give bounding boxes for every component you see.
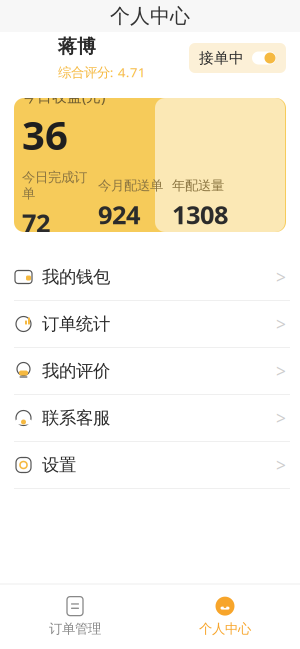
- staticText: 4.71: [118, 63, 146, 81]
- button[interactable]: 我的评价: [0, 348, 300, 395]
- staticText: 1308: [172, 198, 228, 231]
- staticText: 我的评价: [42, 360, 110, 382]
- staticText: 个人中心: [199, 621, 251, 637]
- staticText: 我的钱包: [42, 266, 110, 288]
- button[interactable]: 个人中心: [150, 590, 300, 643]
- staticText: >: [276, 359, 286, 382]
- staticText: >: [276, 453, 286, 476]
- staticText: 今月配送单: [98, 177, 163, 194]
- staticText: 72: [22, 206, 50, 239]
- staticText: 订单统计: [42, 313, 110, 335]
- button[interactable]: 接单中: [189, 43, 286, 73]
- staticText: 924: [98, 198, 140, 231]
- staticText: 年配送量: [172, 177, 224, 194]
- button[interactable]: 订单统计: [0, 301, 300, 348]
- staticText: >: [276, 406, 286, 429]
- button[interactable]: 设置: [0, 442, 300, 489]
- staticText: 接单中: [199, 49, 244, 67]
- staticText: 个人中心: [110, 4, 190, 28]
- button[interactable]: 订单管理: [0, 590, 150, 643]
- staticText: 订单管理: [49, 621, 101, 637]
- staticText: >: [276, 265, 286, 288]
- staticText: 设置: [42, 454, 76, 476]
- staticText: 36: [22, 108, 68, 161]
- staticText: 综合评分:: [58, 63, 114, 81]
- staticText: 今日收益(元): [22, 86, 105, 106]
- button[interactable]: 我的钱包: [0, 254, 300, 301]
- staticText: 今日完成订单: [22, 169, 87, 202]
- staticText: 蒋博: [58, 35, 96, 58]
- staticText: >: [276, 312, 286, 335]
- staticText: 联系客服: [42, 407, 110, 429]
- button[interactable]: 联系客服: [0, 395, 300, 442]
